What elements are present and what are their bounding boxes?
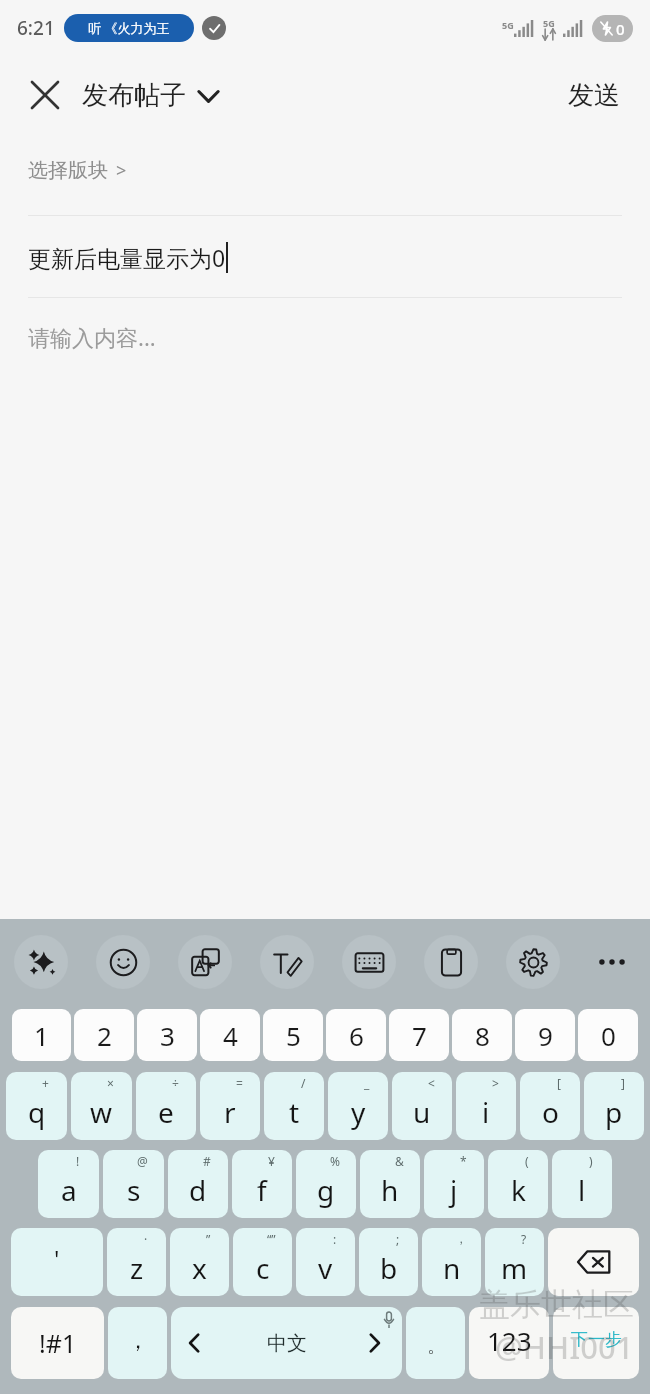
- button[interactable]: 表情: [96, 935, 150, 989]
- button[interactable]: #: [168, 1150, 228, 1218]
- staticText: p: [605, 1093, 623, 1131]
- button[interactable]: 手写输入: [260, 935, 314, 989]
- staticText: i: [482, 1093, 490, 1131]
- button[interactable]: 空格，中文: [171, 1307, 402, 1379]
- staticText: v: [318, 1249, 333, 1287]
- button[interactable]: 请输入内容...: [0, 322, 650, 352]
- button[interactable]: 设置: [506, 935, 560, 989]
- staticText: 发布帖子: [82, 79, 186, 112]
- button[interactable]: _: [328, 1072, 388, 1140]
- staticText: 4: [223, 1018, 238, 1053]
- staticText: h: [381, 1171, 399, 1209]
- staticText: 发送: [568, 79, 620, 112]
- button[interactable]: “”: [233, 1228, 292, 1296]
- staticText: ]: [621, 1075, 625, 1091]
- staticText: n: [443, 1249, 461, 1287]
- staticText: e: [158, 1093, 174, 1131]
- button[interactable]: ;: [359, 1228, 418, 1296]
- button[interactable]: ，: [108, 1307, 167, 1379]
- button[interactable]: 翻译: [178, 935, 232, 989]
- button[interactable]: 8: [452, 1009, 512, 1061]
- button[interactable]: :: [296, 1228, 355, 1296]
- button[interactable]: 剪贴板: [424, 935, 478, 989]
- staticText: ，: [127, 1327, 149, 1355]
- button[interactable]: !#1: [11, 1307, 104, 1379]
- staticText: 中文: [267, 1331, 307, 1356]
- staticText: [: [557, 1075, 561, 1091]
- button[interactable]: =: [200, 1072, 260, 1140]
- staticText: u: [413, 1093, 431, 1131]
- staticText: %: [330, 1153, 340, 1169]
- button[interactable]: 更多: [588, 938, 636, 986]
- button[interactable]: %: [296, 1150, 356, 1218]
- staticText: 5G: [543, 17, 555, 29]
- staticText: f: [257, 1171, 267, 1209]
- staticText: +: [42, 1075, 49, 1091]
- staticText: ÷: [172, 1075, 179, 1091]
- button[interactable]: !: [38, 1150, 99, 1218]
- staticText: <: [428, 1075, 435, 1091]
- staticText: _: [364, 1075, 370, 1091]
- button[interactable]: 7: [389, 1009, 449, 1061]
- button[interactable]: AI 助手: [14, 935, 68, 989]
- staticText: ·: [144, 1231, 148, 1247]
- staticText: j: [450, 1171, 458, 1209]
- button[interactable]: 0: [578, 1009, 638, 1061]
- button[interactable]: 4: [200, 1009, 260, 1061]
- staticText: t: [289, 1093, 300, 1131]
- staticText: =: [236, 1075, 243, 1091]
- button[interactable]: ·: [107, 1228, 166, 1296]
- button[interactable]: 2: [74, 1009, 134, 1061]
- staticText: *: [460, 1153, 467, 1169]
- button[interactable]: ”: [170, 1228, 229, 1296]
- button[interactable]: 听 《火力为王: [64, 14, 194, 42]
- button[interactable]: 下一步: [553, 1307, 639, 1379]
- staticText: !: [76, 1153, 80, 1169]
- button[interactable]: 123: [469, 1307, 549, 1379]
- staticText: 123: [487, 1323, 532, 1358]
- staticText: 9: [538, 1018, 553, 1053]
- button[interactable]: 更新后电量显示为0: [0, 242, 650, 273]
- button[interactable]: (: [488, 1150, 548, 1218]
- button[interactable]: /: [264, 1072, 324, 1140]
- button[interactable]: *: [424, 1150, 484, 1218]
- button[interactable]: ×: [71, 1072, 132, 1140]
- button[interactable]: <: [392, 1072, 452, 1140]
- staticText: ): [589, 1153, 593, 1169]
- staticText: 请输入内容...: [28, 322, 156, 352]
- staticText: &: [395, 1153, 404, 1169]
- button[interactable]: 关闭: [22, 72, 68, 118]
- button[interactable]: ]: [584, 1072, 644, 1140]
- button[interactable]: 6: [326, 1009, 386, 1061]
- button[interactable]: 5: [263, 1009, 323, 1061]
- button[interactable]: >: [456, 1072, 516, 1140]
- button[interactable]: ÷: [136, 1072, 196, 1140]
- button[interactable]: @: [103, 1150, 164, 1218]
- button[interactable]: 键盘: [342, 935, 396, 989]
- staticText: ;: [396, 1231, 400, 1247]
- staticText: 5G: [502, 19, 514, 31]
- button[interactable]: 退格: [548, 1228, 639, 1296]
- button[interactable]: ?: [485, 1228, 544, 1296]
- button[interactable]: 选择版块: [0, 152, 650, 189]
- button[interactable]: ，: [422, 1228, 481, 1296]
- button[interactable]: 1: [12, 1009, 71, 1061]
- button[interactable]: 3: [137, 1009, 197, 1061]
- button[interactable]: +: [6, 1072, 67, 1140]
- button[interactable]: ': [11, 1228, 103, 1296]
- button[interactable]: 9: [515, 1009, 575, 1061]
- staticText: 6: [349, 1018, 364, 1053]
- staticText: ”: [206, 1231, 211, 1247]
- button[interactable]: 发送: [560, 71, 628, 120]
- staticText: 8: [475, 1018, 490, 1053]
- staticText: b: [380, 1249, 398, 1287]
- button[interactable]: ¥: [232, 1150, 292, 1218]
- button[interactable]: 。: [406, 1307, 465, 1379]
- button[interactable]: [: [520, 1072, 580, 1140]
- staticText: w: [90, 1093, 113, 1131]
- staticText: 选择版块: [28, 158, 108, 183]
- button[interactable]: 发布帖子: [82, 73, 220, 118]
- button[interactable]: &: [360, 1150, 420, 1218]
- button[interactable]: ): [552, 1150, 612, 1218]
- staticText: k: [511, 1171, 526, 1209]
